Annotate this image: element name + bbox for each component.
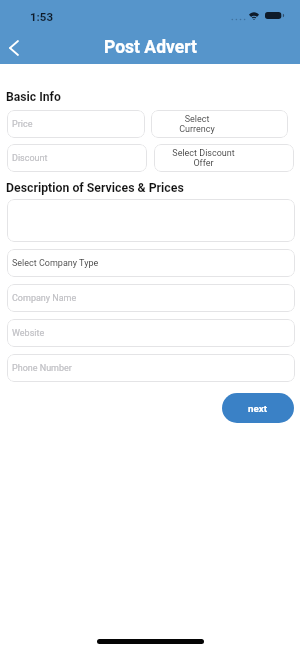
staticText: Price [12, 119, 33, 130]
button[interactable]: Back [2, 32, 34, 64]
staticText: Discount [12, 153, 48, 164]
staticText: Website [12, 328, 45, 339]
button[interactable]: Website [7, 319, 295, 347]
button[interactable]: next [222, 393, 294, 423]
button[interactable]: Company Name [7, 284, 295, 312]
staticText: next [248, 403, 268, 414]
staticText: Basic Info [6, 90, 61, 104]
button[interactable]: Select Company Type [7, 249, 295, 277]
button[interactable]: Discount [7, 144, 147, 172]
staticText: Company Name [12, 293, 77, 304]
staticText: 1:53 [30, 10, 54, 23]
button[interactable] [7, 199, 295, 242]
button[interactable]: Select Discount Offer [154, 144, 294, 172]
button[interactable]: Phone Number [7, 354, 295, 382]
button[interactable]: Price [7, 110, 145, 138]
staticText: Description of Services & Prices [6, 181, 184, 195]
staticText: Post Advert [104, 37, 197, 58]
staticText: Select Discount Offer [172, 148, 235, 168]
button[interactable]: Select Currency [151, 110, 288, 138]
staticText: Phone Number [12, 363, 72, 374]
staticText: Select Company Type [12, 258, 99, 269]
staticText: Select Currency [179, 114, 215, 134]
